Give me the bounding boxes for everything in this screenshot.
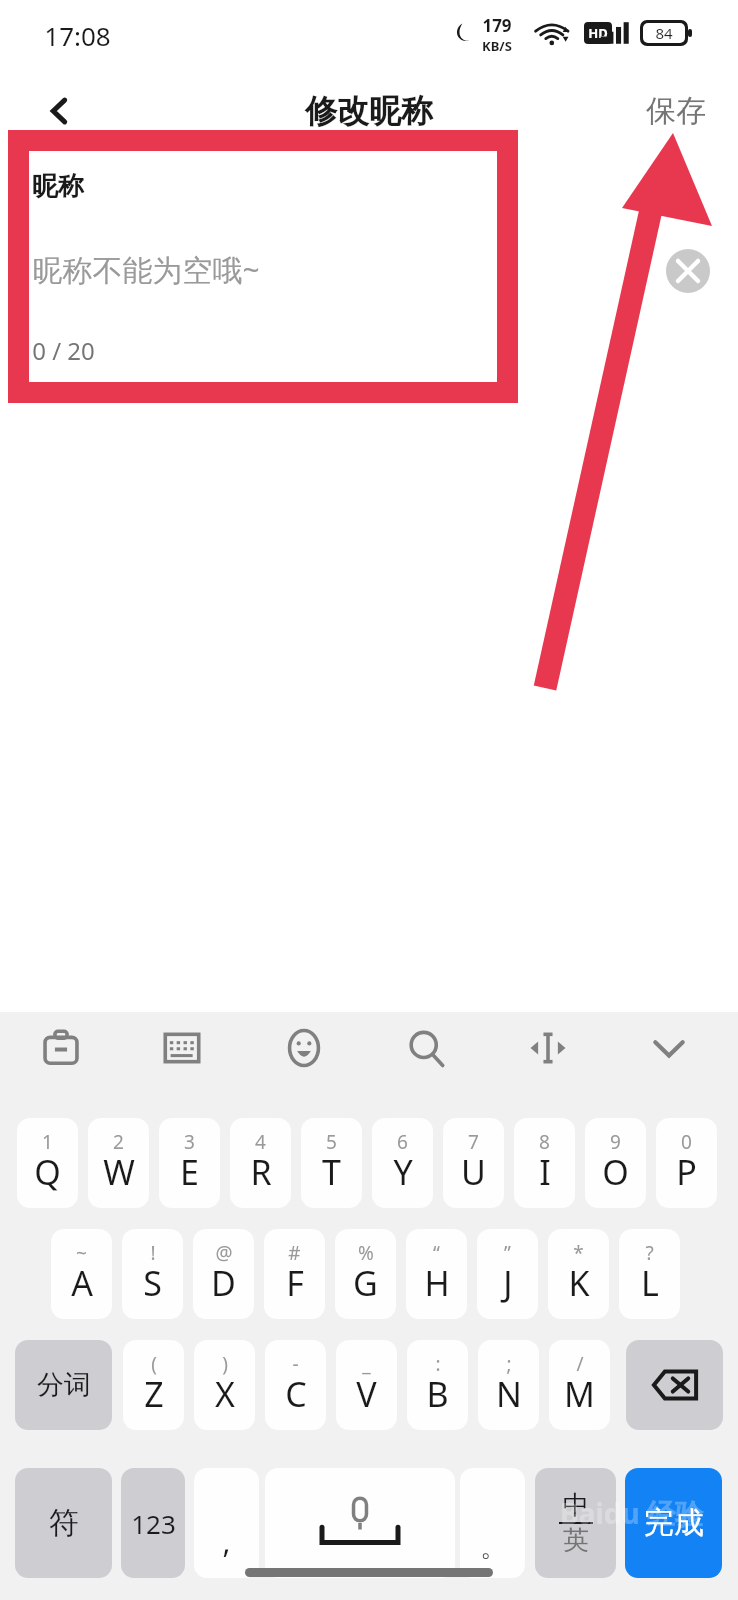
button[interactable]: 2 — [88, 1118, 149, 1208]
staticText: H — [424, 1260, 450, 1306]
staticText: 0 — [681, 1129, 692, 1155]
staticText: 。 — [480, 1531, 506, 1564]
button[interactable]: ” — [477, 1229, 538, 1319]
staticText: ~ — [76, 1240, 87, 1266]
staticText: 中 — [563, 1489, 589, 1522]
button[interactable]: 中 — [535, 1468, 616, 1578]
button[interactable]: 。 — [460, 1468, 525, 1578]
staticText: 完成 — [644, 1504, 704, 1542]
staticText: 179 — [482, 14, 512, 37]
staticText: , — [222, 1521, 231, 1562]
staticText: 5 — [326, 1129, 337, 1155]
staticText: X — [215, 1371, 235, 1417]
button[interactable]: 9 — [585, 1118, 646, 1208]
button[interactable]: 123 — [121, 1468, 185, 1578]
staticText: S — [143, 1260, 162, 1306]
button[interactable]: 返回 — [24, 78, 96, 144]
staticText: % — [358, 1240, 374, 1266]
staticText: ) — [222, 1351, 228, 1377]
staticText: Q — [34, 1149, 61, 1195]
button[interactable]: / — [549, 1340, 610, 1430]
button[interactable] — [626, 1340, 723, 1430]
staticText: D — [211, 1260, 236, 1306]
staticText: @ — [215, 1240, 233, 1266]
button[interactable]: 光标移动 — [512, 1012, 584, 1084]
button[interactable]: 8 — [514, 1118, 575, 1208]
staticText: T — [322, 1149, 341, 1195]
button[interactable]: 关闭 — [666, 249, 710, 293]
staticText: 9 — [610, 1129, 621, 1155]
staticText: 昵称不能为空哦~ — [32, 249, 260, 290]
staticText: 84 — [655, 23, 673, 43]
staticText: ! — [150, 1240, 156, 1266]
staticText: K — [568, 1260, 590, 1306]
button[interactable]: : — [407, 1340, 468, 1430]
button[interactable]: 符 — [15, 1468, 112, 1578]
staticText: - — [292, 1351, 299, 1377]
button[interactable]: 7 — [443, 1118, 504, 1208]
staticText: # — [288, 1240, 301, 1266]
staticText: _ — [362, 1351, 371, 1377]
staticText: 4 — [255, 1129, 266, 1155]
button[interactable]: ? — [619, 1229, 680, 1319]
staticText: C — [285, 1371, 307, 1417]
button[interactable]: 3 — [159, 1118, 220, 1208]
staticText: 7 — [468, 1129, 479, 1155]
staticText: 英 — [563, 1524, 589, 1557]
button[interactable]: # — [264, 1229, 325, 1319]
staticText: F — [286, 1260, 304, 1306]
button[interactable]: ; — [478, 1340, 539, 1430]
button[interactable]: , — [194, 1468, 259, 1578]
button[interactable]: 剪贴板 — [25, 1012, 97, 1084]
staticText: 1 — [42, 1129, 53, 1155]
button[interactable]: 表情 — [268, 1012, 340, 1084]
staticText: 8 — [539, 1129, 550, 1155]
button[interactable]: ~ — [51, 1229, 112, 1319]
button[interactable] — [265, 1468, 455, 1578]
staticText: R — [250, 1149, 272, 1195]
button[interactable]: 0 — [656, 1118, 717, 1208]
button[interactable]: _ — [336, 1340, 397, 1430]
staticText: 2 — [113, 1129, 124, 1155]
staticText: KB/S — [482, 37, 512, 55]
staticText: / — [576, 1351, 584, 1377]
staticText: 修改昵称 — [305, 91, 433, 131]
staticText: 符 — [49, 1504, 79, 1542]
button[interactable]: ! — [122, 1229, 183, 1319]
staticText: 昵称 — [32, 170, 84, 203]
staticText: N — [496, 1371, 522, 1417]
button[interactable]: 1 — [17, 1118, 78, 1208]
button[interactable]: 保存 — [636, 84, 716, 138]
staticText: V — [356, 1371, 377, 1417]
button[interactable]: 搜索 — [390, 1012, 462, 1084]
staticText: I — [539, 1149, 551, 1195]
button[interactable]: ( — [123, 1340, 184, 1430]
staticText: U — [461, 1149, 486, 1195]
button[interactable]: 键盘设置 — [146, 1012, 218, 1084]
button[interactable]: 完成 — [625, 1468, 722, 1578]
button[interactable]: 4 — [230, 1118, 291, 1208]
button[interactable]: “ — [406, 1229, 467, 1319]
staticText: ; — [506, 1351, 512, 1377]
staticText: “ — [433, 1240, 440, 1266]
button[interactable]: * — [548, 1229, 609, 1319]
staticText: * — [573, 1240, 584, 1266]
staticText: W — [103, 1149, 135, 1195]
staticText: 分词 — [37, 1368, 91, 1402]
button[interactable]: 6 — [372, 1118, 433, 1208]
button[interactable]: % — [335, 1229, 396, 1319]
button[interactable]: @ — [193, 1229, 254, 1319]
button[interactable]: 分词 — [15, 1340, 112, 1430]
staticText: G — [353, 1260, 378, 1306]
staticText: : — [435, 1351, 441, 1377]
staticText: O — [602, 1149, 629, 1195]
button[interactable]: 5 — [301, 1118, 362, 1208]
button[interactable]: 收起键盘 — [633, 1012, 705, 1084]
staticText: HD — [588, 24, 608, 42]
staticText: J — [503, 1260, 513, 1306]
button[interactable]: - — [265, 1340, 326, 1430]
staticText: ? — [645, 1240, 654, 1266]
staticText: A — [71, 1260, 93, 1306]
button[interactable]: ) — [194, 1340, 255, 1430]
staticText: 123 — [131, 1506, 176, 1541]
